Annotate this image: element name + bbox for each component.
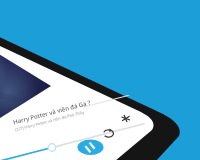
button[interactable]: Replay 10 seconds xyxy=(101,126,116,140)
staticText: Harry Potter và viên đá Gà ? xyxy=(12,99,92,126)
staticText: (2/7) Harry Potter và Hòn đá Phù Thủy xyxy=(15,109,86,132)
button[interactable]: Pause xyxy=(77,139,104,156)
button[interactable]: Cast to device xyxy=(119,112,133,125)
